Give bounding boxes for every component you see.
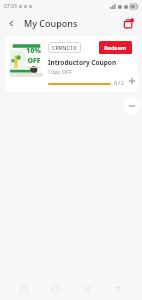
button[interactable]: 10% xyxy=(5,36,137,92)
button[interactable]: Back xyxy=(3,15,19,31)
button[interactable]: Home xyxy=(48,282,62,296)
staticText: My Coupons xyxy=(24,17,78,29)
staticText: Redeem xyxy=(104,44,127,51)
staticText: 07:33 xyxy=(4,3,17,10)
staticText: Introductory Coupon xyxy=(48,58,117,67)
button[interactable]: Back xyxy=(80,282,94,296)
staticText: 10% xyxy=(26,46,41,56)
button[interactable]: Cart xyxy=(120,15,136,31)
button[interactable]: CPRNC10 xyxy=(48,42,81,53)
staticText: 0 / 20 U xyxy=(114,80,132,87)
button[interactable]: Add xyxy=(123,72,140,89)
staticText: CPRNC10 xyxy=(52,44,77,51)
staticText: 10pc OFF xyxy=(48,68,72,75)
button[interactable]: Recents xyxy=(17,282,31,296)
staticText: OFF xyxy=(27,56,41,66)
button[interactable]: Assistant xyxy=(111,282,125,296)
button[interactable]: Remove xyxy=(123,97,140,114)
button[interactable]: Redeem xyxy=(99,41,132,54)
